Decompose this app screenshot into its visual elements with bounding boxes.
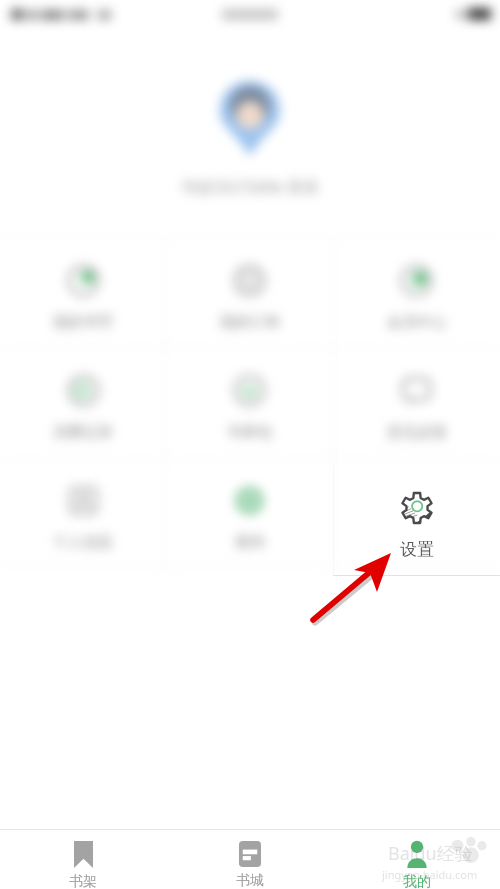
staticText: 我的 xyxy=(403,873,431,889)
button[interactable]: 意见反馈 xyxy=(333,348,500,457)
button[interactable]: 会员中心 xyxy=(333,238,500,347)
button[interactable]: 消费记录 xyxy=(0,348,166,457)
staticText: 消费记录 xyxy=(53,423,113,442)
button[interactable]: 我的订单 xyxy=(166,238,333,347)
staticText: 意见反馈 xyxy=(387,423,447,442)
staticText: 书友5fa73d9e 登录 xyxy=(181,176,320,198)
button[interactable]: 我的书币 xyxy=(0,238,166,347)
button[interactable]: 我的 xyxy=(333,830,500,889)
button[interactable]: 夜间 xyxy=(166,458,333,567)
button[interactable]: 个人信息 xyxy=(0,458,166,567)
staticText: 书架 xyxy=(69,873,97,889)
button[interactable]: 书券包 xyxy=(166,348,333,457)
button[interactable]: 设置 xyxy=(333,466,500,575)
button[interactable]: 书架 xyxy=(0,830,166,889)
staticText: 夜间 xyxy=(235,533,265,552)
staticText: 书城 xyxy=(236,872,264,889)
button[interactable]: 书城 xyxy=(166,830,333,889)
staticText: Baidu经验 xyxy=(388,841,473,866)
staticText: 会员中心 xyxy=(387,313,447,332)
staticText: 我的订单 xyxy=(220,313,280,332)
staticText: 设置 xyxy=(400,539,434,560)
staticText: 书券包 xyxy=(227,423,272,442)
staticText: 我的书币 xyxy=(53,313,113,332)
staticText: jingyan.baidu.com xyxy=(382,867,478,882)
staticText: 个人信息 xyxy=(53,533,113,552)
